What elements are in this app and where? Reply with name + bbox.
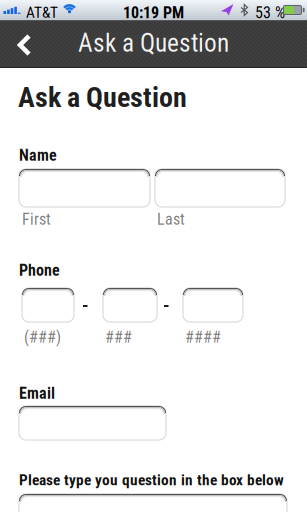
staticText: AT&T: [26, 3, 58, 21]
staticText: Email: [19, 384, 55, 403]
staticText: Last: [157, 210, 185, 229]
staticText: Please type you question in the box belo…: [19, 471, 284, 489]
staticText: ###: [105, 328, 132, 347]
staticText: First: [22, 210, 51, 229]
staticText: ####: [185, 328, 221, 347]
staticText: Ask a Question: [78, 28, 229, 58]
staticText: (###): [24, 328, 61, 347]
staticText: 53 %: [255, 3, 285, 22]
staticText: Phone: [19, 261, 60, 280]
staticText: Ask a Question: [18, 81, 187, 114]
button[interactable]: Back: [0, 20, 46, 68]
staticText: Name: [19, 146, 57, 165]
staticText: 10:19 PM: [123, 3, 184, 22]
